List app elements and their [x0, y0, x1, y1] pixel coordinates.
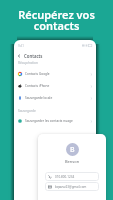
- button[interactable]: Sauvegarde locale: [14, 92, 96, 104]
- staticText: Récupération: [18, 61, 38, 65]
- staticText: 9:41: [18, 44, 24, 48]
- staticText: Contacts: [24, 53, 43, 59]
- button[interactable]: Contacts Google: [14, 68, 96, 80]
- staticText: Récupérez vos contacts: [18, 7, 95, 33]
- other: Back: [17, 54, 21, 58]
- staticText: Sauvegarder les contacts nuage: [25, 119, 90, 123]
- staticText: B: [70, 145, 75, 155]
- staticText: bqwvsv23@gmail.com: [55, 185, 87, 189]
- staticText: 010-800-1234: [55, 175, 75, 179]
- button[interactable]: Back: [14, 50, 96, 62]
- staticText: Sauvegarde: [18, 109, 36, 113]
- staticText: Sauvegarde locale: [25, 96, 90, 100]
- button[interactable]: Contacts iPhone: [14, 80, 96, 92]
- staticText: Contacts Google: [25, 72, 90, 76]
- button[interactable]: Sauvegarder les contacts nuage: [14, 115, 96, 127]
- button[interactable]: bqwvsv23@gmail.com: [45, 182, 99, 191]
- staticText: Benson: [65, 159, 80, 164]
- button[interactable]: 010-800-1234: [45, 172, 99, 181]
- staticText: Contacts iPhone: [25, 84, 90, 88]
